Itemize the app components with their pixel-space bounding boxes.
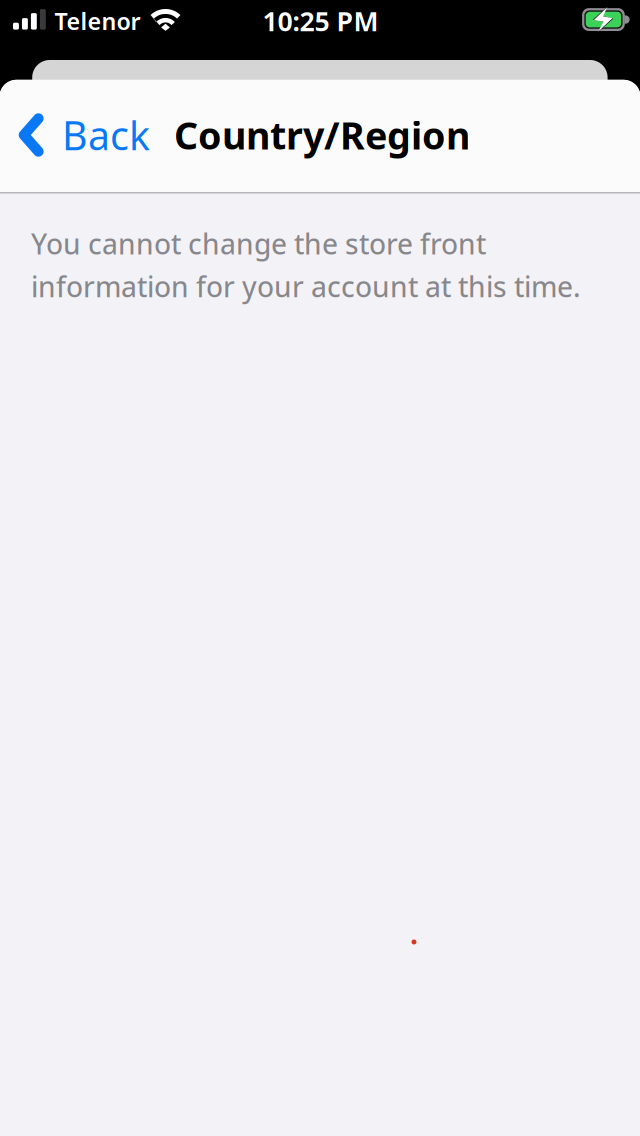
button[interactable]: Back bbox=[0, 91, 152, 179]
staticText: You cannot change the store front inform… bbox=[31, 224, 581, 305]
staticText: Telenor bbox=[54, 5, 140, 37]
staticText: 10:25 PM bbox=[262, 3, 378, 39]
staticText: Back bbox=[62, 108, 150, 162]
staticText: Country/Region bbox=[174, 109, 470, 161]
